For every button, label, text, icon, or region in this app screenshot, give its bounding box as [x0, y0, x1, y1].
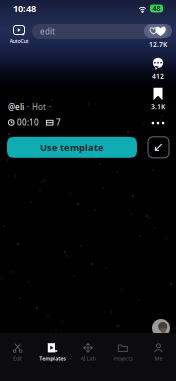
staticText: 412 — [152, 72, 164, 81]
staticText: · — [49, 102, 51, 112]
staticText: 00:10 — [17, 117, 39, 128]
staticText: AI Lab — [80, 355, 95, 362]
staticText: edit — [40, 26, 55, 37]
button[interactable]: More — [143, 119, 173, 127]
staticText: 7 — [56, 117, 61, 128]
button[interactable]: Templates — [35, 333, 70, 381]
button[interactable]: edit — [32, 17, 170, 39]
button[interactable]: 412 — [143, 58, 173, 81]
staticText: AutoCut — [9, 37, 28, 45]
button[interactable]: Use template — [7, 137, 137, 158]
staticText: Templates — [39, 355, 66, 362]
staticText: Me — [154, 355, 162, 362]
staticText: Projects — [113, 355, 133, 362]
staticText: Use template — [40, 141, 104, 153]
staticText: Edit — [13, 355, 22, 362]
staticText: Hot — [32, 102, 46, 112]
button[interactable]: Projects — [106, 333, 141, 381]
staticText: @eli — [8, 102, 24, 112]
staticText: 48 — [152, 4, 160, 13]
button[interactable]: AutoCut — [6, 17, 32, 45]
button[interactable]: 3.1K — [143, 88, 173, 111]
button[interactable]: AI Lab — [70, 333, 106, 381]
staticText: 3.1K — [151, 102, 165, 111]
staticText: · — [27, 102, 29, 112]
staticText: 10:48 — [13, 2, 36, 15]
button[interactable]: Edit — [0, 333, 35, 381]
staticText: 12.7K — [149, 40, 167, 49]
button[interactable]: 12.7K — [143, 24, 173, 49]
button[interactable]: Save — [148, 137, 169, 158]
button[interactable]: Me — [141, 333, 176, 381]
